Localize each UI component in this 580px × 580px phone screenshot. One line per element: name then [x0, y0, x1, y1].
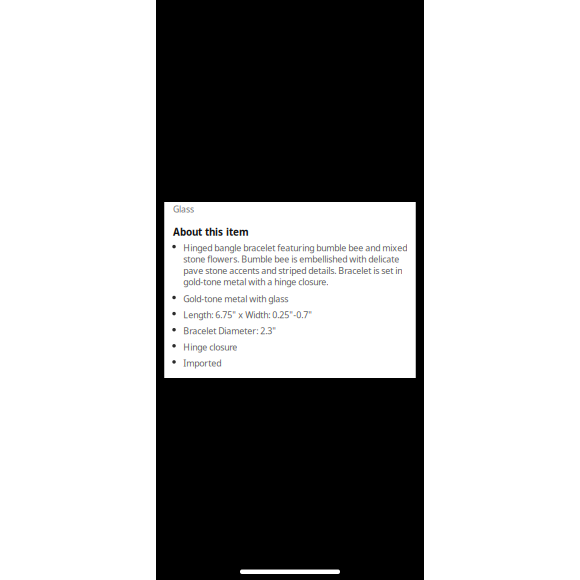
staticText: Length: 6.75" x Width: 0.25"-0.7"	[183, 309, 312, 321]
staticText: Hinge closure	[183, 341, 237, 353]
button[interactable]: Home	[240, 569, 340, 580]
staticText: Glass	[173, 203, 194, 215]
staticText: Gold-tone metal with glass	[183, 293, 288, 305]
staticText: About this item	[173, 225, 249, 238]
staticText: Imported	[183, 357, 221, 369]
staticText: Bracelet Diameter: 2.3"	[183, 325, 276, 337]
staticText: Hinged bangle bracelet featuring bumble …	[183, 242, 407, 288]
